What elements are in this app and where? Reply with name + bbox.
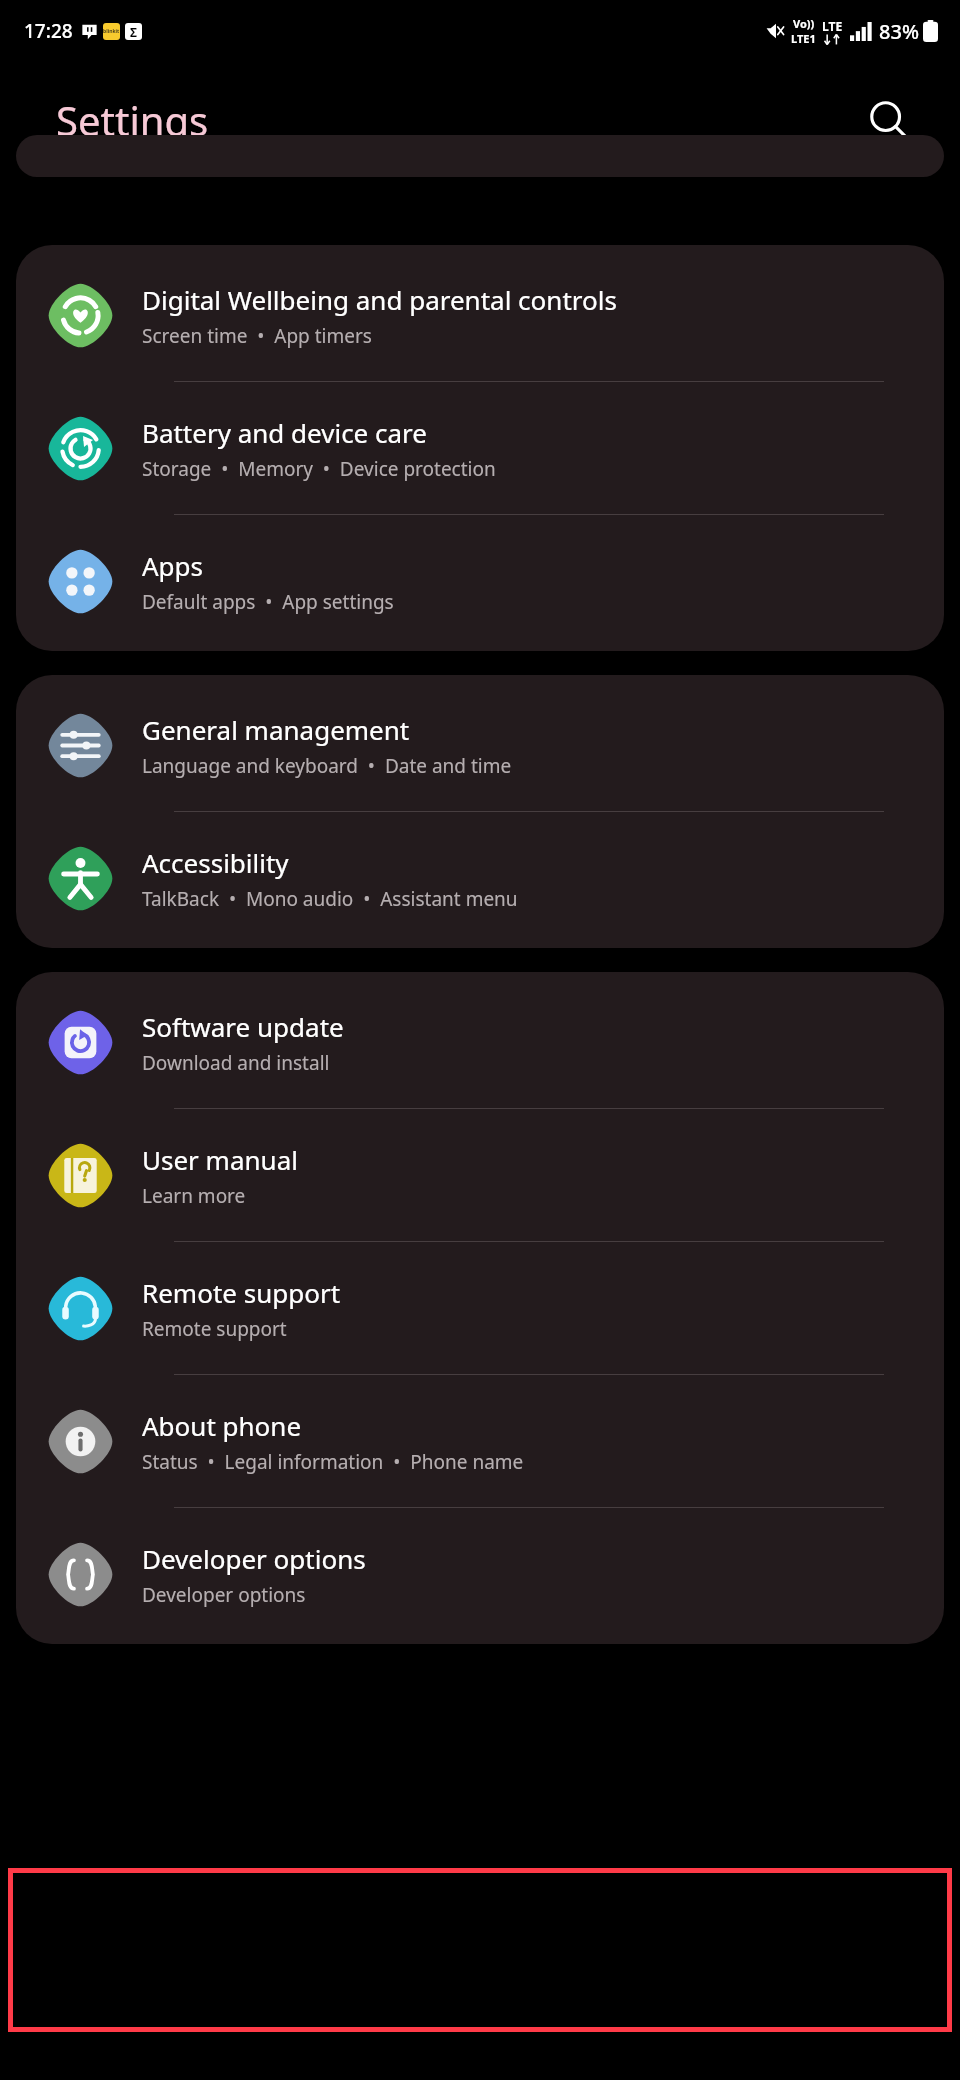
button[interactable]: Remote support bbox=[16, 1242, 944, 1375]
staticText: LTE1 bbox=[791, 31, 816, 46]
staticText: Download and install bbox=[142, 1050, 330, 1076]
button[interactable]: Developer options bbox=[16, 1508, 944, 1640]
button[interactable]: Battery and device care bbox=[16, 382, 944, 515]
staticText: User manual bbox=[142, 1142, 298, 1177]
staticText: Learn more bbox=[142, 1183, 246, 1209]
staticText: Default apps • App settings bbox=[142, 589, 394, 615]
staticText: Vo)) bbox=[793, 16, 815, 31]
staticText: Developer options bbox=[142, 1582, 306, 1608]
staticText: About phone bbox=[142, 1408, 302, 1443]
staticText: Settings bbox=[56, 93, 209, 147]
staticText: Remote support bbox=[142, 1316, 287, 1342]
button[interactable]: Search bbox=[856, 87, 922, 153]
staticText: Σ bbox=[130, 24, 137, 40]
button[interactable]: Accessibility bbox=[16, 812, 944, 944]
staticText: Software update bbox=[142, 1009, 344, 1044]
staticText: Battery and device care bbox=[142, 415, 427, 450]
staticText: Screen time • App timers bbox=[142, 323, 372, 349]
button[interactable]: General management bbox=[16, 679, 944, 812]
staticText: blinkit bbox=[103, 28, 120, 35]
button[interactable]: Apps bbox=[16, 515, 944, 647]
staticText: Status • Legal information • Phone name bbox=[142, 1449, 524, 1475]
button[interactable]: User manual bbox=[16, 1109, 944, 1242]
staticText: Developer options bbox=[142, 1541, 366, 1576]
button[interactable]: About phone bbox=[16, 1375, 944, 1508]
button[interactable]: Search settings bbox=[16, 135, 944, 177]
staticText: General management bbox=[142, 712, 410, 747]
button[interactable]: Digital Wellbeing and parental controls bbox=[16, 249, 944, 382]
staticText: Digital Wellbeing and parental controls bbox=[142, 282, 617, 317]
staticText: Apps bbox=[142, 548, 204, 583]
button[interactable]: Software update bbox=[16, 976, 944, 1109]
staticText: 17:28 bbox=[24, 18, 73, 44]
staticText: TalkBack • Mono audio • Assistant menu bbox=[142, 886, 518, 912]
staticText: Accessibility bbox=[142, 845, 289, 880]
staticText: Language and keyboard • Date and time bbox=[142, 753, 512, 779]
staticText: 83% bbox=[879, 18, 919, 45]
staticText: LTE bbox=[822, 18, 843, 34]
staticText: Remote support bbox=[142, 1275, 341, 1310]
staticText: Storage • Memory • Device protection bbox=[142, 456, 496, 482]
